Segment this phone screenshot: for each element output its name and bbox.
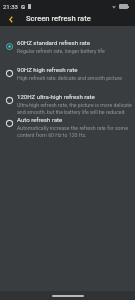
staticText: High refresh rate, delicate and smooth p… [17, 75, 123, 81]
button[interactable]: Back [0, 12, 21, 26]
staticText: Auto refresh rate [17, 116, 63, 123]
button[interactable]: 60HZ standard refresh rate [0, 39, 135, 66]
button[interactable]: Auto refresh rate [0, 116, 135, 138]
button[interactable]: 120HZ ultra-high refresh rate [0, 93, 135, 116]
staticText: Regular refresh rate, longer battery lif… [17, 48, 105, 54]
staticText: 60HZ standard refresh rate [17, 39, 90, 46]
staticText: 90HZ high refresh rate [17, 66, 78, 73]
button[interactable]: 90HZ high refresh rate [0, 66, 135, 93]
staticText: 120HZ ultra-high refresh rate [17, 93, 95, 100]
staticText: Automatically increase the refresh rate … [17, 125, 134, 138]
staticText: 21:33 [3, 3, 18, 10]
staticText: Ultra-high refresh rate, the picture is … [17, 102, 134, 115]
staticText: G [21, 3, 26, 10]
staticText: Screen refresh rate [26, 14, 91, 23]
